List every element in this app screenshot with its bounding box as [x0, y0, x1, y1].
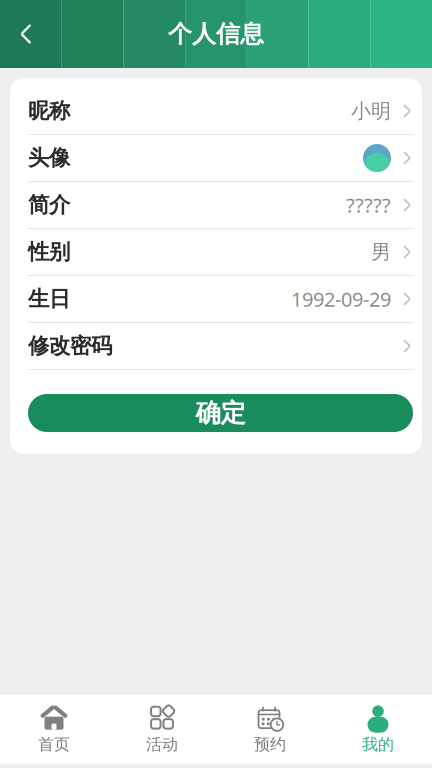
- staticText: 生日: [28, 286, 70, 312]
- button[interactable]: 简介: [28, 182, 413, 229]
- staticText: 个人信息: [168, 19, 264, 49]
- staticText: 1992-09-29: [291, 286, 391, 312]
- staticText: 我的: [362, 735, 394, 754]
- staticText: 头像: [28, 145, 70, 171]
- staticText: 确定: [195, 397, 245, 428]
- button[interactable]: 预约: [216, 695, 324, 764]
- staticText: 男: [371, 240, 391, 264]
- button[interactable]: 确定: [28, 394, 413, 432]
- button[interactable]: 修改密码: [28, 323, 413, 370]
- staticText: 小明: [351, 99, 391, 123]
- button[interactable]: 我的: [324, 695, 432, 764]
- staticText: ?????: [346, 192, 391, 218]
- button[interactable]: 活动: [108, 695, 216, 764]
- staticText: 昵称: [28, 98, 70, 124]
- staticText: 活动: [146, 735, 178, 754]
- staticText: 预约: [254, 735, 286, 754]
- staticText: 首页: [38, 735, 70, 754]
- staticText: 修改密码: [28, 333, 112, 359]
- button[interactable]: 生日: [28, 276, 413, 323]
- button[interactable]: Back: [0, 4, 52, 64]
- button[interactable]: 首页: [0, 695, 108, 764]
- staticText: 简介: [28, 192, 70, 218]
- button[interactable]: 昵称: [28, 88, 413, 135]
- button[interactable]: 头像: [28, 135, 413, 182]
- staticText: 性别: [28, 239, 70, 265]
- button[interactable]: 性别: [28, 229, 413, 276]
